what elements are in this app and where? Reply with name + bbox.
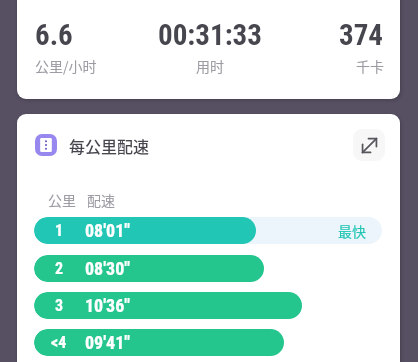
staticText: 09'41" [85,332,131,353]
button[interactable]: Expand chart [353,129,385,161]
button[interactable]: <4 [34,329,382,356]
staticText: 3 [55,296,64,315]
staticText: 08'30" [85,258,131,279]
staticText: 6.6 [35,18,73,52]
staticText: 2 [55,259,64,278]
button[interactable]: 2 [34,255,382,282]
button[interactable]: 3 [34,292,382,319]
button[interactable]: 1 [34,217,382,244]
staticText: 千卡 [356,56,384,76]
staticText: 最快 [338,221,366,241]
staticText: 10'36" [85,295,131,316]
staticText: 用时 [196,56,224,76]
staticText: 公里 [48,190,76,210]
staticText: 1 [55,221,64,240]
staticText: 00:31:33 [158,18,262,52]
staticText: 374 [339,18,384,52]
staticText: 每公里配速 [69,134,150,157]
staticText: 配速 [87,190,115,210]
staticText: 08'01" [85,220,131,241]
staticText: <4 [51,333,67,352]
staticText: 公里/小时 [35,56,97,76]
